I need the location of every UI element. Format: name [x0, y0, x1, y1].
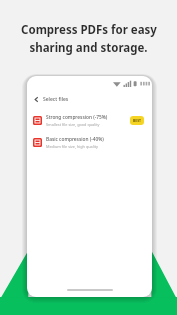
staticText: Compress PDFs for easy	[21, 22, 157, 38]
staticText: Medium file size, high quality	[46, 144, 98, 149]
other: Back	[33, 96, 40, 103]
staticText: Select files	[43, 96, 69, 103]
staticText: BEST	[133, 118, 141, 123]
staticText: Strong compression (-75%)	[46, 114, 108, 121]
button[interactable]: Strong compression (-75%)	[27, 112, 152, 129]
staticText: sharing and storage.	[29, 40, 148, 56]
staticText: Smallest file size, good quality	[46, 122, 100, 127]
button[interactable]: Basic compression (-40%)	[27, 134, 152, 151]
button[interactable]: Back	[27, 90, 152, 108]
staticText: Basic compression (-40%)	[46, 136, 104, 143]
